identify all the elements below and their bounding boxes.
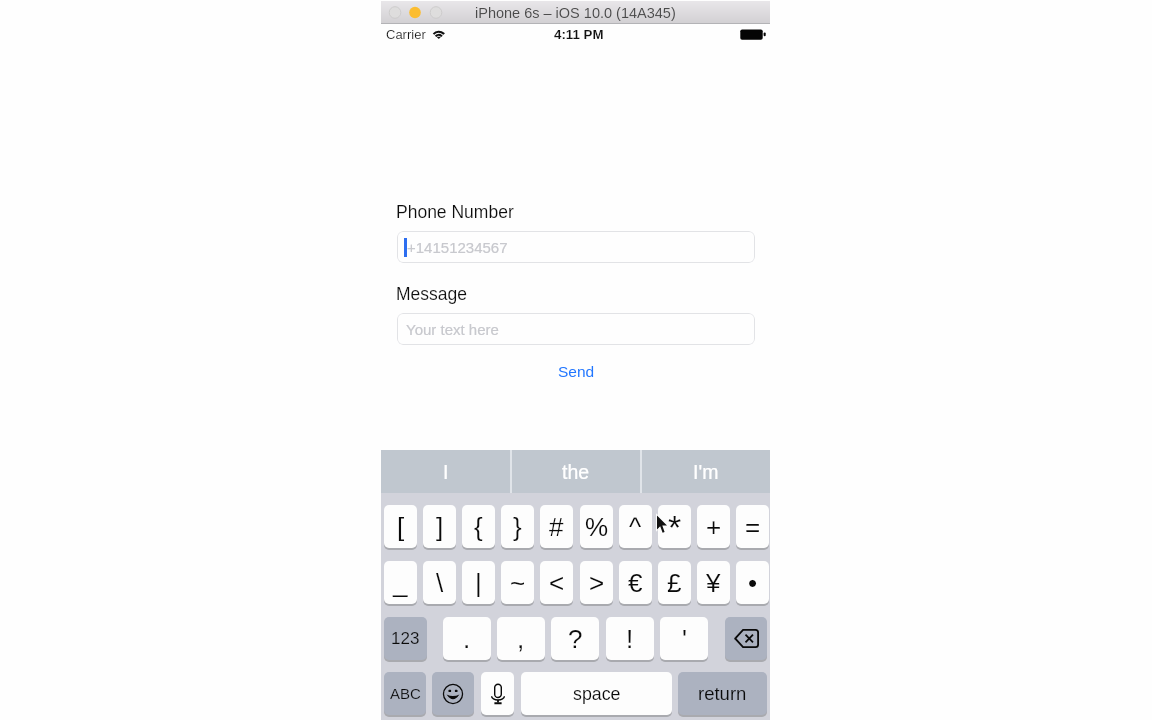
staticText: € [628, 568, 643, 597]
button[interactable]: I [381, 450, 510, 493]
staticText: I [443, 461, 449, 483]
staticText: ? [568, 624, 583, 653]
button[interactable]: [ [384, 505, 417, 548]
button[interactable]: ' [660, 617, 708, 660]
button[interactable]: _ [384, 561, 417, 604]
button[interactable]: ? [551, 617, 599, 660]
staticText: 123 [391, 629, 420, 648]
button[interactable]: } [501, 505, 534, 548]
staticText: } [513, 512, 522, 541]
staticText: Message [396, 284, 468, 304]
button[interactable]: space [521, 672, 672, 715]
button[interactable]: Delete [725, 617, 767, 660]
staticText: # [549, 512, 564, 541]
button[interactable]: £ [658, 561, 691, 604]
button[interactable]: € [619, 561, 652, 604]
button[interactable]: > [580, 561, 613, 604]
button[interactable]: ! [606, 617, 654, 660]
button[interactable]: 123 [384, 617, 427, 660]
button[interactable]: . [443, 617, 491, 660]
staticText: \ [436, 568, 444, 597]
button[interactable]: the [512, 450, 640, 493]
staticText: +14151234567 [407, 239, 508, 256]
staticText: • [748, 568, 758, 597]
button[interactable]: = [736, 505, 769, 548]
button[interactable]: { [462, 505, 495, 548]
staticText: ] [436, 512, 444, 541]
button[interactable]: • [736, 561, 769, 604]
button[interactable]: % [580, 505, 613, 548]
staticText: Carrier [386, 27, 426, 42]
staticText: I'm [693, 461, 719, 483]
staticText: % [585, 512, 609, 541]
staticText: £ [667, 568, 682, 597]
staticText: ^ [629, 512, 642, 541]
button[interactable]: I'm [642, 450, 770, 493]
button[interactable]: \ [423, 561, 456, 604]
button[interactable]: # [540, 505, 573, 548]
staticText: * [668, 508, 682, 546]
staticText: ' [682, 624, 687, 653]
staticText: ~ [510, 568, 526, 597]
staticText: the [562, 461, 590, 483]
staticText: ! [626, 624, 634, 653]
staticText: Your text here [406, 321, 499, 338]
button[interactable]: ^ [619, 505, 652, 548]
staticText: ¥ [706, 568, 721, 597]
button[interactable]: Send [397, 360, 755, 382]
staticText: Send [558, 363, 595, 380]
button[interactable]: Dictate [481, 672, 514, 715]
staticText: return [698, 683, 747, 704]
staticText: Phone Number [396, 202, 514, 222]
staticText: = [745, 512, 761, 541]
button[interactable]: < [540, 561, 573, 604]
staticText: 4:11 PM [554, 27, 604, 42]
staticText: [ [397, 512, 405, 541]
staticText: , [517, 624, 525, 653]
button[interactable]: +14151234567 [397, 231, 755, 263]
button[interactable]: ABC [384, 672, 426, 715]
button[interactable]: return [678, 672, 767, 715]
button[interactable]: | [462, 561, 495, 604]
staticText: | [475, 568, 482, 597]
staticText: { [474, 512, 483, 541]
staticText: space [573, 684, 621, 704]
button[interactable]: ¥ [697, 561, 730, 604]
button[interactable]: Emoji [432, 672, 474, 715]
staticText: iPhone 6s – iOS 10.0 (14A345) [475, 5, 676, 21]
staticText: ABC [390, 685, 421, 702]
button[interactable]: ] [423, 505, 456, 548]
button[interactable]: * [658, 505, 691, 548]
staticText: _ [393, 568, 408, 597]
staticText: < [549, 568, 565, 597]
staticText: > [589, 568, 605, 597]
button[interactable]: ~ [501, 561, 534, 604]
button[interactable]: Your text here [397, 313, 755, 345]
button[interactable]: + [697, 505, 730, 548]
staticText: + [706, 512, 722, 541]
button[interactable]: , [497, 617, 545, 660]
staticText: . [463, 624, 471, 653]
